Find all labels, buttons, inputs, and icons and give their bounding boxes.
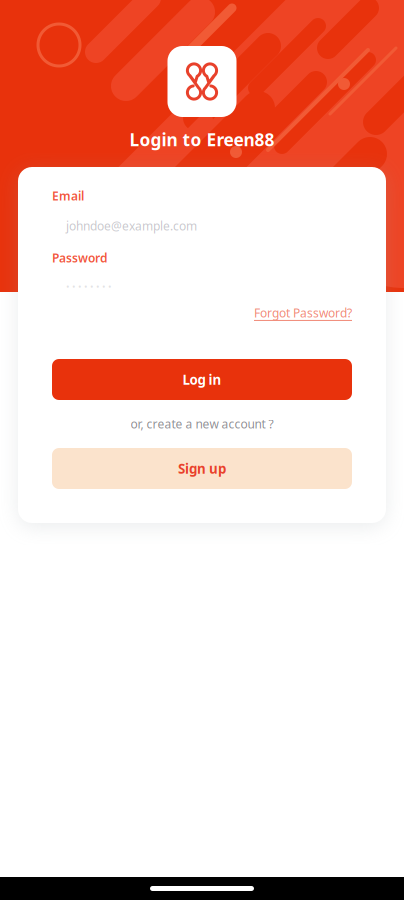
staticText: Forgot Password?: [254, 305, 352, 321]
staticText: or, create a new account ?: [130, 416, 273, 432]
staticText: Sign up: [178, 460, 226, 477]
staticText: Email: [52, 188, 84, 204]
button[interactable]: Log in: [52, 359, 352, 400]
staticText: johndoe@example.com: [66, 218, 197, 234]
staticText: Log in: [182, 371, 221, 388]
staticText: • • • • • • • •: [66, 280, 112, 292]
button[interactable]: Sign up: [52, 448, 352, 489]
staticText: Login to Ereen88: [129, 128, 274, 151]
button[interactable]: Forgot Password?: [254, 303, 352, 323]
staticText: Password: [52, 250, 108, 266]
